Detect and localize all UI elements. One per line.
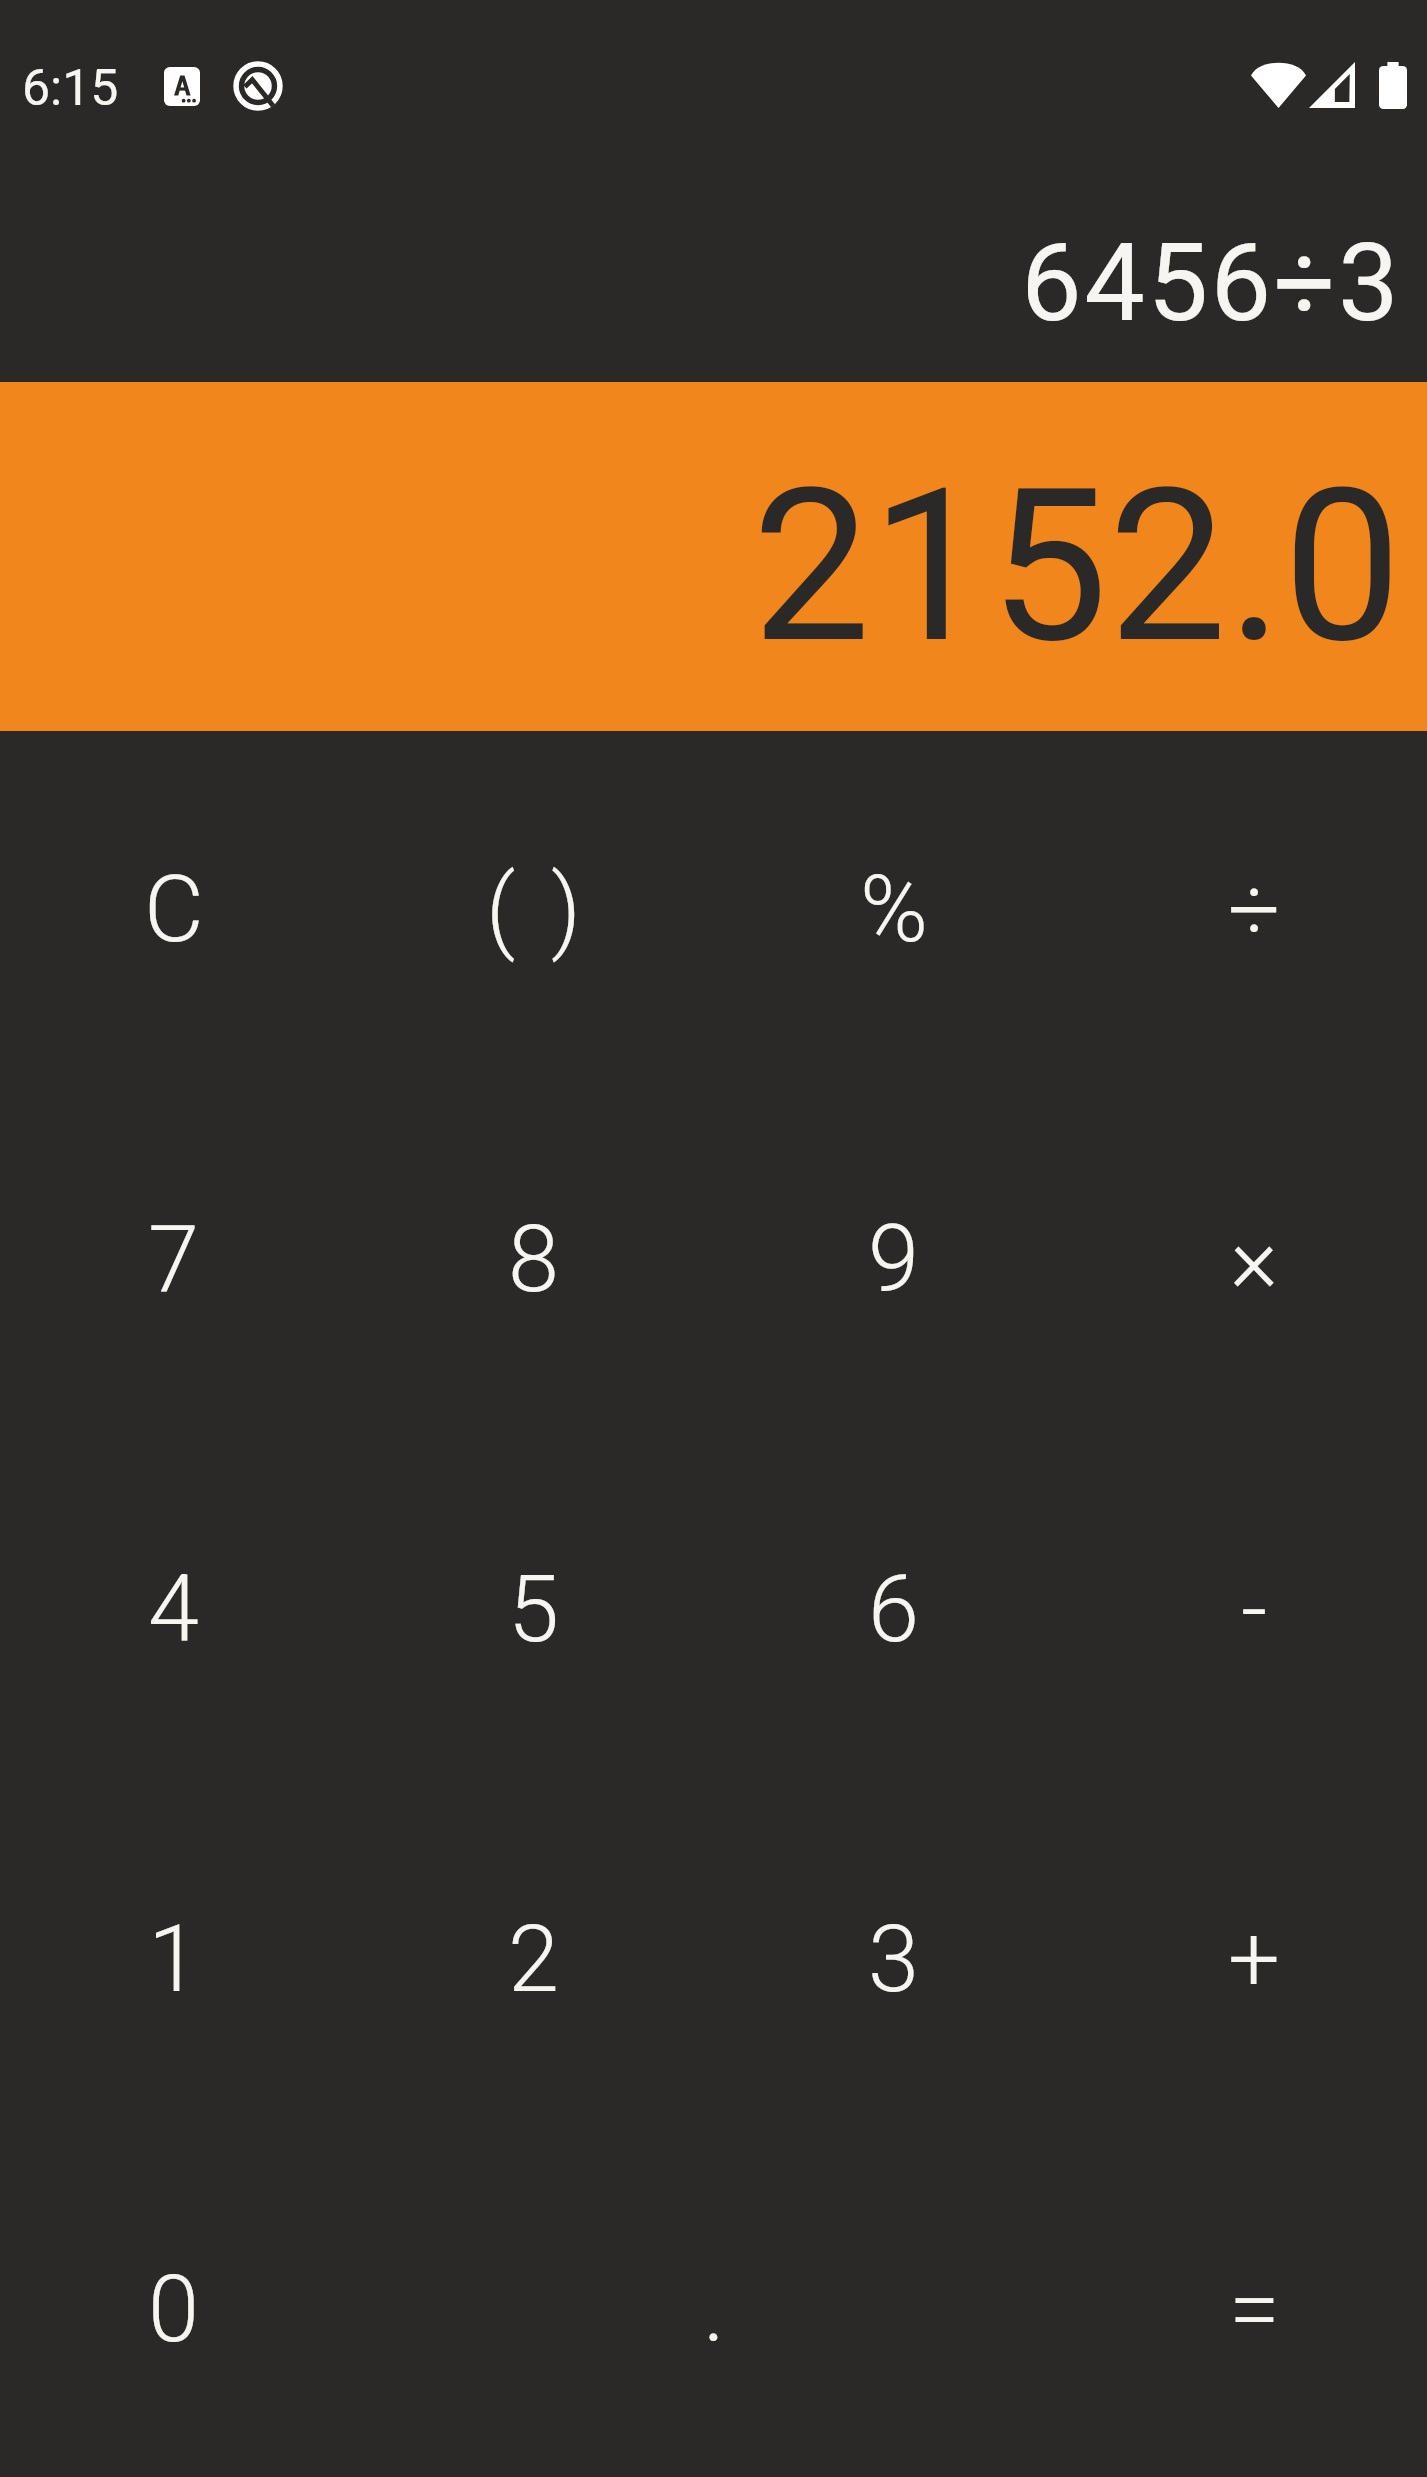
staticText: 9 <box>868 1206 920 1314</box>
button[interactable]: 3 <box>714 1785 1074 2135</box>
button[interactable]: ÷ <box>1074 735 1427 1085</box>
staticText: + <box>1228 1906 1280 2014</box>
other: Input method <box>164 67 200 106</box>
button[interactable]: C <box>0 735 354 1085</box>
staticText: 0 <box>148 2256 200 2364</box>
button[interactable]: % <box>714 735 1074 1085</box>
staticText: 5 <box>508 1556 560 1664</box>
button[interactable]: + <box>1074 1785 1427 2135</box>
other: Wi-Fi <box>1251 62 1306 108</box>
staticText: ÷ <box>1228 856 1281 964</box>
button[interactable]: 0 <box>0 2135 354 2477</box>
button[interactable]: 8 <box>354 1085 714 1435</box>
staticText: × <box>1230 1206 1279 1314</box>
button[interactable]: ( <box>354 735 714 1085</box>
staticText: 7 <box>148 1206 200 1314</box>
staticText: 6 <box>868 1556 920 1664</box>
staticText: C <box>144 856 204 964</box>
staticText: 2 <box>508 1906 560 2014</box>
button[interactable]: × <box>1074 1085 1427 1435</box>
staticText: % <box>860 856 929 964</box>
staticText: 2152.0 <box>752 443 1402 690</box>
button[interactable]: 9 <box>714 1085 1074 1435</box>
other: Battery <box>1379 62 1407 109</box>
button[interactable]: = <box>1074 2135 1427 2477</box>
staticText: 1 <box>148 1906 200 2014</box>
staticText: 6:15 <box>22 59 119 118</box>
staticText: 4 <box>148 1556 200 1664</box>
staticText: - <box>1241 1556 1268 1664</box>
button[interactable]: 2 <box>354 1785 714 2135</box>
button[interactable]: 5 <box>354 1435 714 1785</box>
staticText: . <box>703 2256 725 2364</box>
button[interactable]: 1 <box>0 1785 354 2135</box>
staticText: ) <box>551 856 582 964</box>
staticText: 8 <box>508 1206 560 1314</box>
staticText: 3 <box>868 1906 920 2014</box>
button[interactable]: 7 <box>0 1085 354 1435</box>
other: Notification <box>232 60 284 112</box>
staticText: ( <box>486 856 516 964</box>
button[interactable]: 6 <box>714 1435 1074 1785</box>
staticText: 6456÷3 <box>1021 220 1402 347</box>
other: Mobile signal <box>1309 62 1355 108</box>
staticText: = <box>1229 2256 1280 2364</box>
button[interactable]: 4 <box>0 1435 354 1785</box>
button[interactable]: - <box>1074 1435 1427 1785</box>
